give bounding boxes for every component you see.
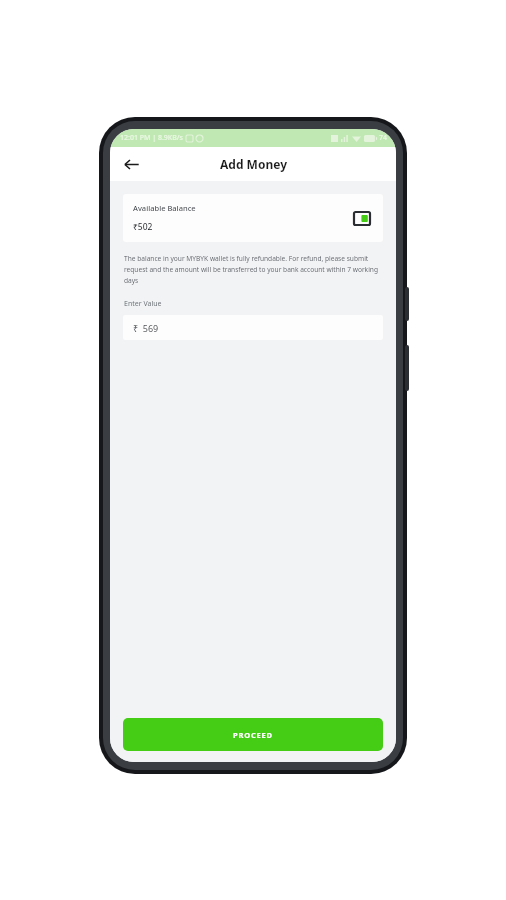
staticText: The balance in your MYBYK wallet is full… xyxy=(124,254,382,285)
staticText: Enter Value xyxy=(124,299,162,309)
staticText: ₹ 569 xyxy=(133,322,159,334)
staticText: Available Balance xyxy=(133,203,196,213)
staticText: ₹502 xyxy=(133,221,153,233)
staticText: Add Money xyxy=(220,156,287,172)
button[interactable]: Available Balance xyxy=(123,194,383,242)
button[interactable]: ₹ 569 xyxy=(123,315,383,340)
staticText: 12:01 PM | 8.9KB/s xyxy=(120,133,183,143)
button[interactable]: Back xyxy=(118,151,144,177)
button[interactable]: Wallet xyxy=(353,209,371,227)
staticText: PROCEED xyxy=(233,730,273,740)
staticText: 74 xyxy=(379,133,388,143)
button[interactable]: PROCEED xyxy=(123,718,383,751)
